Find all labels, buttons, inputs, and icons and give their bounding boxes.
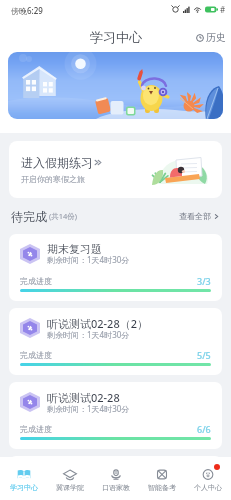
staticText: 听说测试02-28 [47,390,120,405]
staticText: 剩余时间：1天4时30分 [47,329,130,340]
staticText: 学习中心 [10,483,38,492]
staticText: 完成进度 [20,276,52,286]
button[interactable]: 查看全部 [179,211,220,221]
staticText: 冀课学院 [56,483,84,492]
button[interactable]: 进入假期练习 [9,141,222,198]
staticText: 期末复习题 [47,242,102,256]
staticText: # [220,4,226,15]
staticText: 完成进度 [20,424,52,434]
button[interactable]: 智能备考 [139,457,185,500]
button[interactable]: 期末复习题 [9,234,222,301]
button[interactable]: 个人中心 [185,457,231,500]
staticText: 查看全部 [179,211,211,221]
staticText: 6/6 [197,423,211,435]
other: History [196,34,204,42]
staticText: (共14份) [49,211,78,221]
staticText: 智能备考 [148,483,176,492]
staticText: 进入假期练习 [21,155,93,170]
staticText: 剩余时间：1天4时30分 [47,254,130,265]
button[interactable]: 听说测试02-28 [9,382,222,449]
button[interactable] [8,52,223,119]
staticText: 学习中心 [90,29,142,45]
button[interactable]: 听说测试02-28（2） [9,308,222,375]
staticText: 听说测试02-28（2） [47,316,148,331]
staticText: 历史 [206,31,226,44]
staticText: 傍晚6:29 [11,5,43,16]
button[interactable]: 口语家教 [93,457,139,500]
button[interactable]: 学习中心 [0,457,47,500]
staticText: 剩余时间：1天4时30分 [47,403,130,414]
staticText: 个人中心 [194,483,222,492]
button[interactable]: History [196,31,226,44]
staticText: 待完成 [11,209,47,224]
staticText: 口语家教 [102,483,130,492]
staticText: 5/5 [197,349,211,361]
button[interactable]: 冀课学院 [47,457,93,500]
staticText: 完成进度 [20,350,52,360]
staticText: 3/3 [197,275,211,287]
staticText: 开启你的寒假之旅 [21,174,85,184]
